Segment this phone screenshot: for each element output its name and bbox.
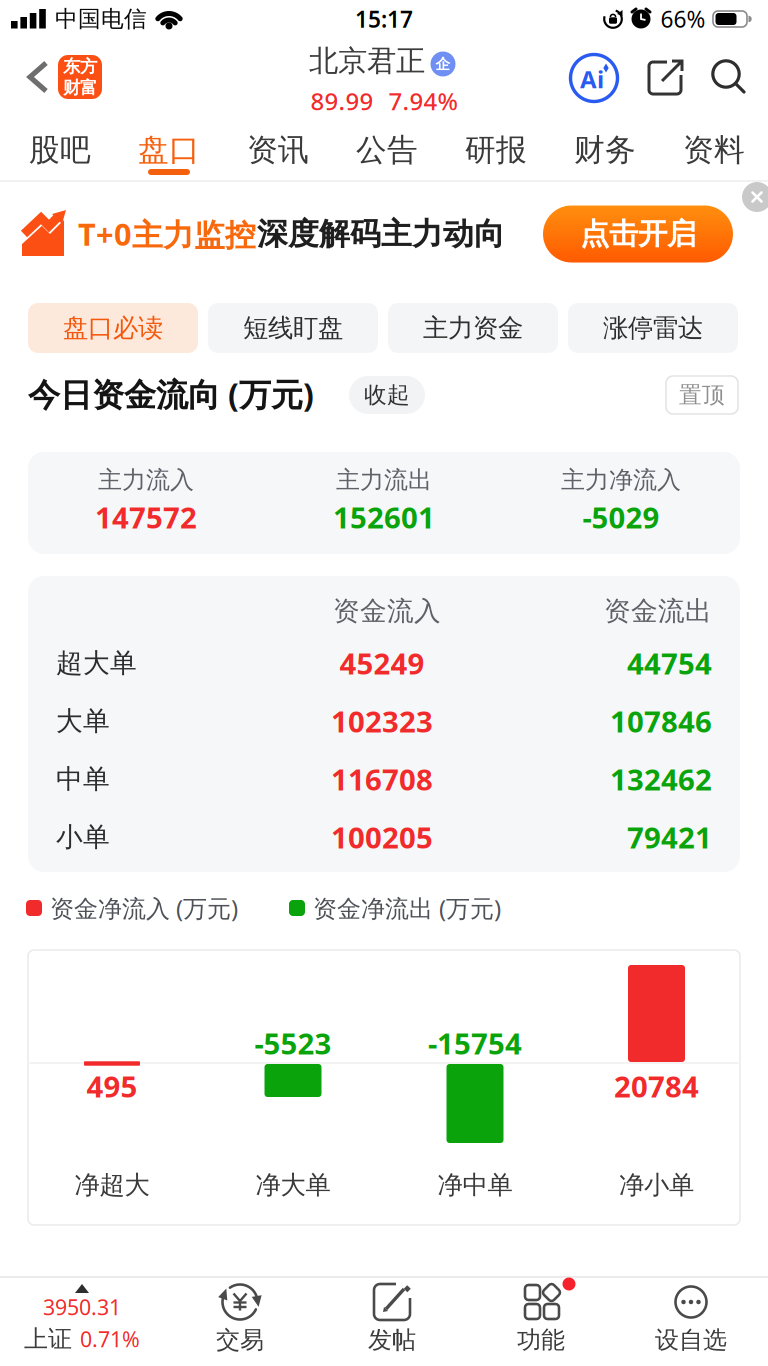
- button[interactable]: 资料: [664, 124, 764, 176]
- staticText: 主力净流入: [561, 465, 681, 495]
- staticText: 89.99: [310, 85, 373, 117]
- staticText: 股吧: [29, 131, 91, 169]
- button[interactable]: 财务: [555, 124, 655, 176]
- staticText: 交易: [216, 1325, 264, 1355]
- button[interactable]: 涨停雷达: [568, 303, 738, 353]
- staticText: 0.71%: [80, 1325, 140, 1353]
- staticText: 中国电信: [55, 5, 147, 33]
- staticText: 今日资金流向 (万元): [28, 373, 314, 415]
- staticText: 资讯: [247, 131, 309, 169]
- staticText: 净大单: [255, 1169, 330, 1200]
- button[interactable]: 东方财富: [58, 55, 102, 99]
- staticText: 3950.31: [43, 1293, 121, 1321]
- staticText: 净中单: [437, 1169, 512, 1200]
- staticText: -5523: [254, 1023, 331, 1062]
- button[interactable]: 短线盯盘: [208, 303, 378, 353]
- staticText: 设自选: [655, 1325, 727, 1355]
- staticText: 147572: [95, 497, 197, 536]
- button[interactable]: 交易: [180, 1278, 300, 1362]
- staticText: 资金净流出 (万元): [313, 892, 501, 924]
- staticText: 盘口: [138, 131, 200, 169]
- staticText: 点击开启: [580, 216, 696, 252]
- staticText: 资金净流入 (万元): [50, 892, 238, 924]
- button[interactable]: 收起: [349, 376, 425, 414]
- staticText: 66%: [660, 4, 705, 34]
- staticText: 102323: [331, 701, 433, 740]
- staticText: 中单: [56, 763, 110, 795]
- button[interactable]: Share: [647, 60, 683, 96]
- staticText: 15:17: [355, 4, 413, 34]
- staticText: T+0主力监控: [78, 214, 256, 254]
- staticText: 企: [435, 55, 450, 73]
- staticText: 主力流入: [98, 465, 194, 495]
- staticText: -5029: [582, 497, 659, 536]
- staticText: 超大单: [56, 647, 137, 679]
- button[interactable]: Ai: [570, 54, 617, 101]
- staticText: 涨停雷达: [603, 312, 703, 343]
- staticText: 财富: [63, 77, 97, 98]
- staticText: 净超大: [74, 1169, 149, 1200]
- staticText: 收起: [364, 381, 410, 409]
- staticText: Ai: [580, 63, 604, 95]
- staticText: 小单: [56, 821, 110, 853]
- button[interactable]: 主力资金: [388, 303, 558, 353]
- button[interactable]: 3950.31: [0, 1282, 167, 1362]
- button[interactable]: 设自选: [631, 1278, 751, 1362]
- button[interactable]: Close: [742, 182, 768, 212]
- button[interactable]: 盘口: [119, 124, 219, 176]
- button[interactable]: T+0主力监控: [0, 182, 768, 287]
- staticText: 7.94%: [388, 85, 457, 117]
- staticText: 短线盯盘: [243, 312, 343, 343]
- staticText: 资金流出: [604, 595, 712, 627]
- button[interactable]: Search: [711, 59, 747, 95]
- staticText: 公告: [356, 131, 418, 169]
- staticText: 上证: [24, 1324, 72, 1354]
- staticText: 置顶: [679, 381, 725, 409]
- staticText: 主力资金: [423, 312, 523, 343]
- button[interactable]: 置顶: [666, 376, 738, 414]
- staticText: 东方: [63, 56, 97, 77]
- staticText: 107846: [610, 701, 712, 740]
- button[interactable]: Back: [28, 61, 48, 93]
- staticText: 45249: [339, 643, 424, 682]
- staticText: 盘口必读: [63, 312, 163, 343]
- staticText: 财务: [574, 131, 636, 169]
- button[interactable]: 盘口必读: [28, 303, 198, 353]
- staticText: 研报: [465, 131, 527, 169]
- staticText: 大单: [56, 705, 110, 737]
- staticText: 132462: [610, 759, 712, 798]
- staticText: 44754: [627, 643, 712, 682]
- staticText: 主力流出: [336, 465, 432, 495]
- button[interactable]: 股吧: [10, 124, 110, 176]
- button[interactable]: 公告: [337, 124, 437, 176]
- button[interactable]: 研报: [446, 124, 546, 176]
- staticText: 资料: [683, 131, 745, 169]
- staticText: 20784: [614, 1066, 699, 1105]
- staticText: 116708: [331, 759, 433, 798]
- staticText: 100205: [331, 817, 433, 856]
- button[interactable]: 功能: [481, 1278, 601, 1362]
- staticText: -15754: [428, 1023, 522, 1062]
- staticText: 北京君正: [309, 43, 425, 79]
- staticText: 净小单: [619, 1169, 694, 1200]
- staticText: 79421: [627, 817, 712, 856]
- staticText: 发帖: [368, 1325, 416, 1355]
- staticText: 495: [86, 1066, 137, 1105]
- button[interactable]: 发帖: [332, 1278, 452, 1362]
- staticText: 功能: [517, 1325, 565, 1355]
- button[interactable]: 资讯: [228, 124, 328, 176]
- staticText: 深度解码主力动向: [257, 215, 505, 253]
- staticText: 资金流入: [333, 595, 441, 627]
- staticText: 152601: [333, 497, 435, 536]
